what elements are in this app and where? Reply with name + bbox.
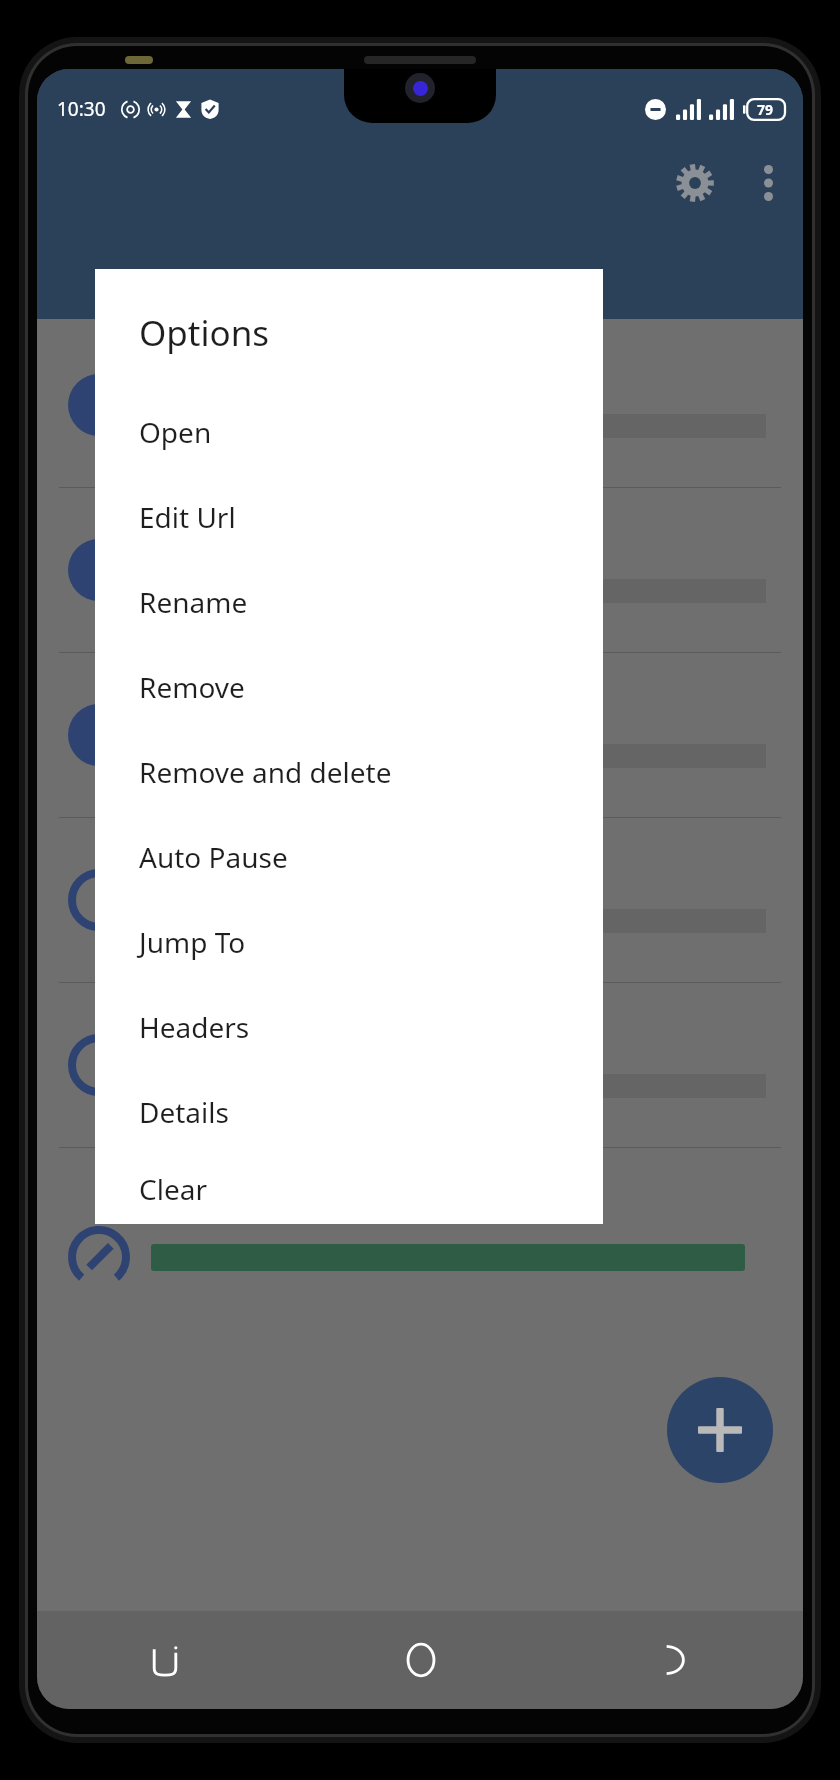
- button[interactable]: Add download: [667, 1377, 773, 1483]
- button[interactable]: Rename: [95, 559, 603, 644]
- button: Options: [95, 269, 603, 1224]
- button[interactable]: Jump To: [95, 899, 603, 984]
- button[interactable]: [37, 323, 803, 487]
- button[interactable]: More options: [741, 156, 795, 210]
- button[interactable]: Recents: [37, 1611, 293, 1709]
- staticText: Headers: [139, 1008, 250, 1046]
- button[interactable]: Remove and delete: [95, 729, 603, 814]
- staticText: Jump To: [139, 923, 246, 961]
- button[interactable]: Back: [548, 1611, 803, 1709]
- staticText: Rename: [139, 583, 248, 621]
- staticText: Edit Url: [139, 498, 236, 536]
- button[interactable]: Details: [95, 1069, 603, 1154]
- staticText: Clear: [139, 1170, 207, 1208]
- staticText: Details: [139, 1093, 229, 1131]
- staticText: Open: [139, 413, 212, 451]
- staticText: Auto Pause: [139, 838, 288, 876]
- button[interactable]: [37, 983, 803, 1147]
- staticText: Remove: [139, 668, 245, 706]
- staticText: 10:30: [57, 96, 106, 122]
- button[interactable]: Edit Url: [95, 474, 603, 559]
- button[interactable]: Remove: [95, 644, 603, 729]
- button[interactable]: Headers: [95, 984, 603, 1069]
- button[interactable]: [37, 653, 803, 817]
- button[interactable]: Forest Sounds.mp3: [37, 1148, 803, 1321]
- button[interactable]: [37, 488, 803, 652]
- staticText: 79: [757, 100, 774, 119]
- button[interactable]: Open: [95, 389, 603, 474]
- button[interactable]: Settings: [665, 153, 725, 213]
- button[interactable]: Home: [293, 1611, 548, 1709]
- staticText: Options: [139, 309, 270, 357]
- button[interactable]: Auto Pause: [95, 814, 603, 899]
- staticText: Remove and delete: [139, 753, 392, 791]
- button[interactable]: [37, 818, 803, 982]
- button[interactable]: Clear: [95, 1154, 603, 1224]
